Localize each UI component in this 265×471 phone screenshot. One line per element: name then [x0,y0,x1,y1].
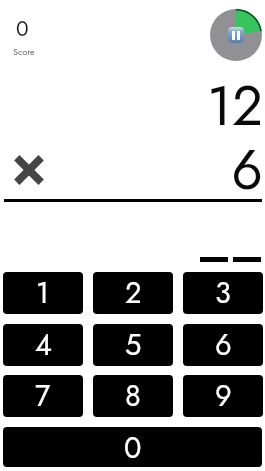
staticText: 3 [215,272,231,314]
staticText: 8 [125,375,141,417]
staticText: 0 [124,427,142,467]
staticText: 6 [215,324,232,366]
button[interactable]: 5 [93,324,173,366]
button[interactable]: 9 [183,375,263,417]
button[interactable]: 8 [93,375,173,417]
button[interactable]: 0 [3,427,262,467]
staticText: 9 [215,375,232,417]
button[interactable]: 2 [93,272,173,314]
staticText: Score [13,45,35,58]
staticText: 5 [125,324,142,366]
button[interactable]: 3 [183,272,263,314]
staticText: 12 [206,66,263,145]
button[interactable]: 4 [3,324,83,366]
button[interactable]: Pause timer [210,9,262,61]
staticText: 2 [125,272,142,314]
button[interactable]: 7 [3,375,83,417]
button[interactable]: 1 [3,272,83,314]
staticText: 7 [35,375,51,417]
staticText: 1 [36,272,50,314]
button[interactable]: 6 [183,324,263,366]
staticText: 0 [16,14,29,44]
staticText: 4 [35,324,52,366]
staticText: 6 [231,130,263,209]
